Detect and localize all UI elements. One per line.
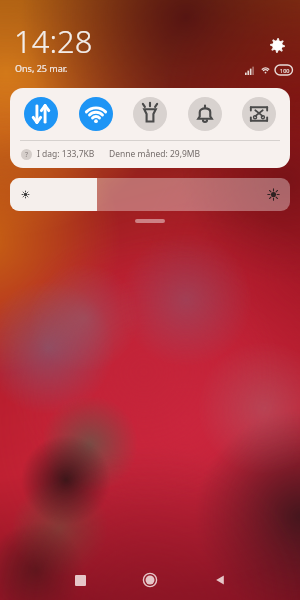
button[interactable]: Screenshot bbox=[242, 97, 276, 131]
button[interactable]: Brightness bbox=[10, 178, 290, 211]
staticText: Ons, 25 mar. bbox=[15, 62, 68, 74]
button[interactable]: Flashlight bbox=[133, 97, 167, 131]
button[interactable]: Expand quick settings bbox=[135, 219, 165, 223]
button[interactable]: Recents bbox=[45, 560, 115, 600]
staticText: ? bbox=[25, 150, 29, 160]
button[interactable]: Mobile data bbox=[24, 97, 58, 131]
staticText: 14:28 bbox=[14, 20, 93, 62]
button[interactable]: Wi-Fi bbox=[79, 97, 113, 131]
button[interactable]: Ringer bbox=[188, 97, 222, 131]
button[interactable]: Settings bbox=[262, 30, 292, 60]
staticText: I dag: 133,7KB bbox=[37, 148, 95, 160]
button[interactable]: Home bbox=[115, 560, 185, 600]
button[interactable]: Back bbox=[185, 560, 255, 600]
staticText: Denne måned: 29,9MB bbox=[109, 148, 201, 160]
button[interactable]: ? bbox=[10, 141, 290, 168]
staticText: 100 bbox=[280, 67, 290, 74]
